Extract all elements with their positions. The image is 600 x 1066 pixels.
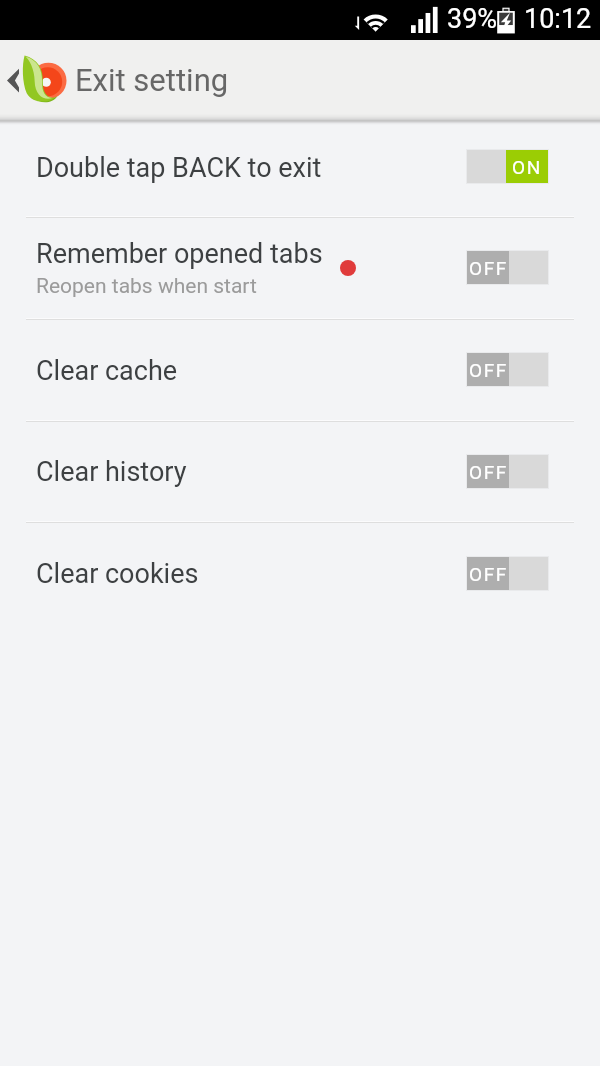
button[interactable]: Back: [0, 40, 72, 118]
button[interactable]: Toggle off: [466, 556, 549, 591]
staticText: 39%: [447, 3, 498, 35]
staticText: Exit setting: [75, 62, 229, 118]
button[interactable]: Toggle off: [466, 454, 549, 489]
button[interactable]: Remember opened tabs: [0, 218, 600, 319]
staticText: ON: [512, 156, 542, 178]
button[interactable]: Clear cookies: [0, 523, 600, 625]
staticText: Remember opened tabs: [36, 238, 323, 270]
button[interactable]: Clear history: [0, 422, 600, 522]
button[interactable]: Toggle on: [466, 149, 549, 184]
staticText: Double tap BACK to exit: [36, 152, 322, 184]
staticText: OFF: [469, 563, 508, 585]
button[interactable]: Clear cache: [0, 320, 600, 421]
button[interactable]: Toggle off: [466, 352, 549, 387]
staticText: Clear cache: [36, 355, 178, 387]
staticText: 10:12: [524, 3, 592, 35]
button[interactable]: Toggle off: [466, 250, 549, 285]
staticText: OFF: [469, 461, 508, 483]
staticText: Clear history: [36, 456, 187, 488]
staticText: OFF: [469, 359, 508, 381]
button[interactable]: Double tap BACK to exit: [0, 118, 600, 217]
staticText: Reopen tabs when start: [36, 274, 257, 299]
staticText: OFF: [469, 257, 508, 279]
staticText: Clear cookies: [36, 558, 199, 590]
